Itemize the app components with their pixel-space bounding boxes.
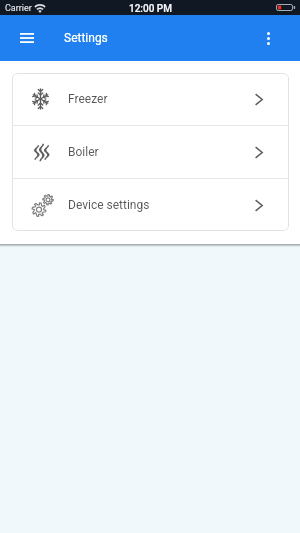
staticText: Settings (64, 31, 108, 45)
staticText: Boiler (68, 145, 99, 159)
staticText: 12:00 PM (129, 3, 172, 15)
button[interactable]: Device settings (12, 179, 289, 231)
button[interactable]: Open navigation menu (4, 15, 50, 61)
button[interactable]: Boiler (12, 126, 289, 178)
button[interactable]: Freezer (12, 73, 289, 125)
staticText: Freezer (68, 92, 108, 106)
button[interactable]: More options (245, 15, 291, 61)
staticText: Device settings (68, 198, 150, 212)
staticText: Carrier (5, 3, 32, 14)
